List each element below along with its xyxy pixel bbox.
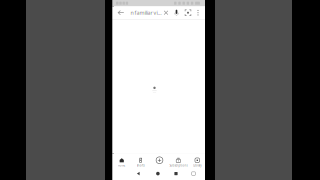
staticText: Subscriptions bbox=[169, 164, 187, 167]
staticText: n familiar vi… bbox=[130, 9, 161, 16]
button[interactable]: Home bbox=[151, 168, 164, 180]
button[interactable]: Shorts bbox=[131, 153, 150, 168]
button[interactable] bbox=[150, 153, 169, 168]
button[interactable]: Clear search bbox=[161, 7, 170, 19]
button[interactable]: Screenshot bbox=[187, 168, 200, 180]
button[interactable]: Home bbox=[112, 153, 131, 168]
button[interactable]: Voice search bbox=[170, 7, 182, 19]
staticText: Home bbox=[118, 164, 126, 167]
button[interactable]: More options bbox=[193, 7, 202, 19]
button[interactable]: Subscriptions bbox=[169, 153, 188, 168]
button[interactable]: Back bbox=[132, 168, 145, 180]
button[interactable]: Recent apps bbox=[169, 168, 182, 180]
staticText: Library bbox=[193, 164, 201, 167]
button[interactable]: Back bbox=[114, 7, 128, 19]
button[interactable]: Search with Google Lens bbox=[182, 7, 193, 19]
button[interactable]: Library bbox=[188, 153, 207, 168]
staticText: Shorts bbox=[137, 164, 145, 167]
